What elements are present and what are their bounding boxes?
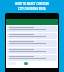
button[interactable] (7, 48, 57, 54)
button[interactable]: Confirm (24, 62, 28, 65)
staticText: CITY CHECKING POOL (18, 7, 46, 11)
button[interactable] (7, 40, 57, 47)
staticText: HOW TO SELECT CHECK-IN (15, 2, 49, 6)
button[interactable] (7, 33, 57, 39)
button[interactable] (7, 26, 57, 32)
button[interactable] (7, 55, 57, 61)
